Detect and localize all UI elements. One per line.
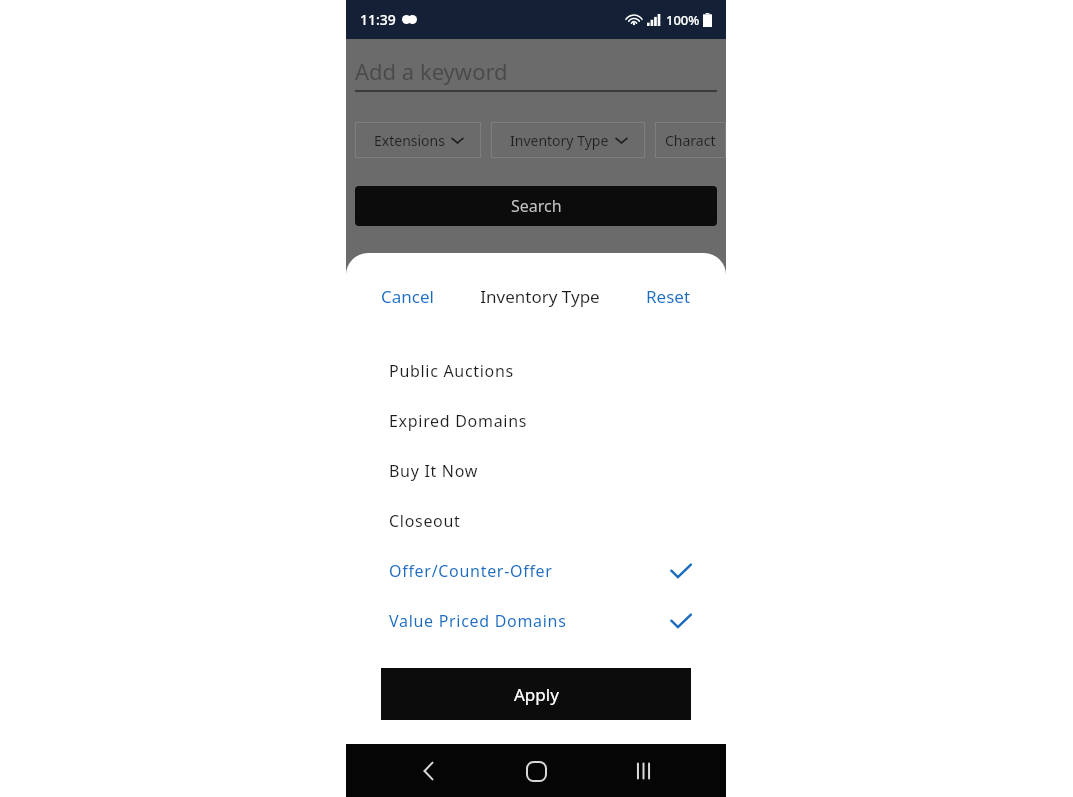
staticText: Charact	[665, 131, 716, 150]
staticText: Reset	[646, 285, 691, 308]
staticText: Public Auctions	[389, 360, 514, 382]
staticText: 11:39	[360, 10, 396, 29]
button[interactable]: Back	[405, 747, 453, 795]
button[interactable]: Closeout	[346, 496, 726, 546]
button[interactable]: Apply	[381, 668, 691, 720]
button[interactable]: Charact	[655, 122, 726, 158]
staticText: Closeout	[389, 510, 461, 532]
staticText: Inventory Type	[510, 131, 609, 150]
button[interactable]: Reset	[644, 281, 693, 312]
staticText: Offer/Counter-Offer	[389, 560, 553, 582]
staticText: Extensions	[374, 131, 445, 150]
staticText: Inventory Type	[480, 285, 600, 308]
button[interactable]: Inventory Type	[491, 122, 645, 158]
button[interactable]: Extensions	[355, 122, 481, 158]
staticText: Add a keyword	[355, 56, 508, 86]
button[interactable]: Offer/Counter-Offer	[346, 546, 726, 596]
button[interactable]: Buy It Now	[346, 446, 726, 496]
button[interactable]: Public Auctions	[346, 346, 726, 396]
staticText: 100%	[666, 11, 700, 29]
staticText: Cancel	[381, 285, 434, 308]
staticText: Value Priced Domains	[389, 610, 567, 632]
button[interactable]: Expired Domains	[346, 396, 726, 446]
button[interactable]: Value Priced Domains	[346, 596, 726, 646]
staticText: Search	[511, 195, 562, 217]
staticText: Expired Domains	[389, 410, 528, 432]
button[interactable]: Recent apps	[619, 747, 667, 795]
staticText: Buy It Now	[389, 460, 479, 482]
button[interactable]: Home	[512, 747, 560, 795]
button[interactable]: Search	[355, 186, 717, 226]
staticText: Apply	[514, 683, 559, 706]
button[interactable]: Cancel	[379, 281, 436, 312]
button[interactable]: Add a keyword	[355, 49, 717, 92]
